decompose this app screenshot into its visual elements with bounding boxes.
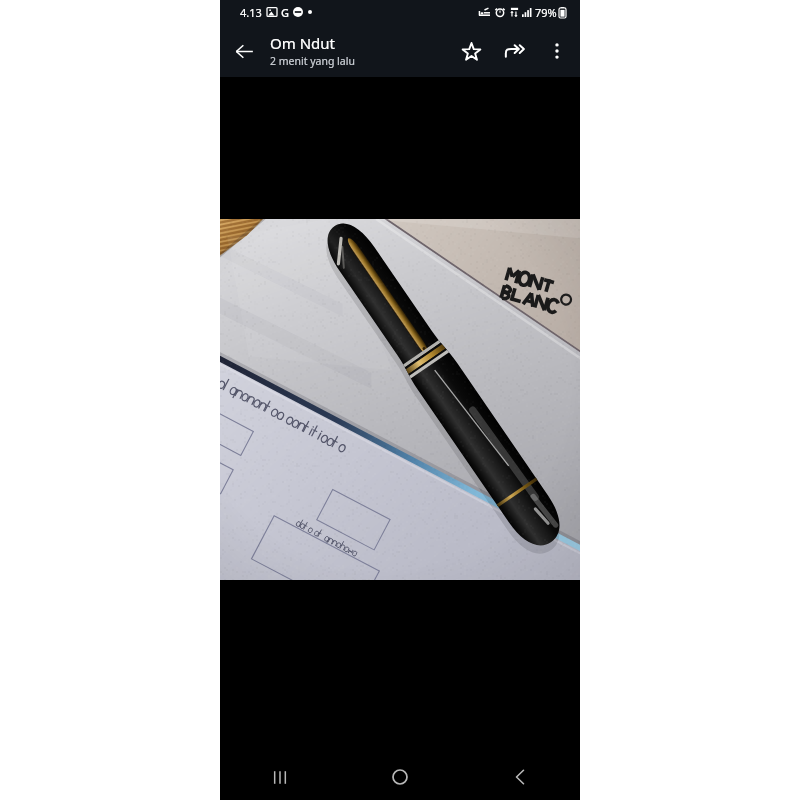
staticText: Om Ndut <box>270 33 335 53</box>
button[interactable]: Home <box>340 754 460 800</box>
button[interactable]: Back <box>460 754 580 800</box>
button[interactable]: Photo <box>220 219 580 580</box>
button[interactable]: Star <box>450 30 492 72</box>
staticText: G <box>281 5 289 20</box>
button[interactable]: More options <box>538 32 576 70</box>
staticText: 4.13 <box>240 5 262 20</box>
button[interactable]: Recent apps <box>220 754 340 800</box>
button[interactable]: Forward <box>494 30 536 72</box>
staticText: 79% <box>535 5 557 20</box>
staticText: 2 menit yang lalu <box>270 54 355 68</box>
button[interactable]: Back <box>224 31 264 71</box>
